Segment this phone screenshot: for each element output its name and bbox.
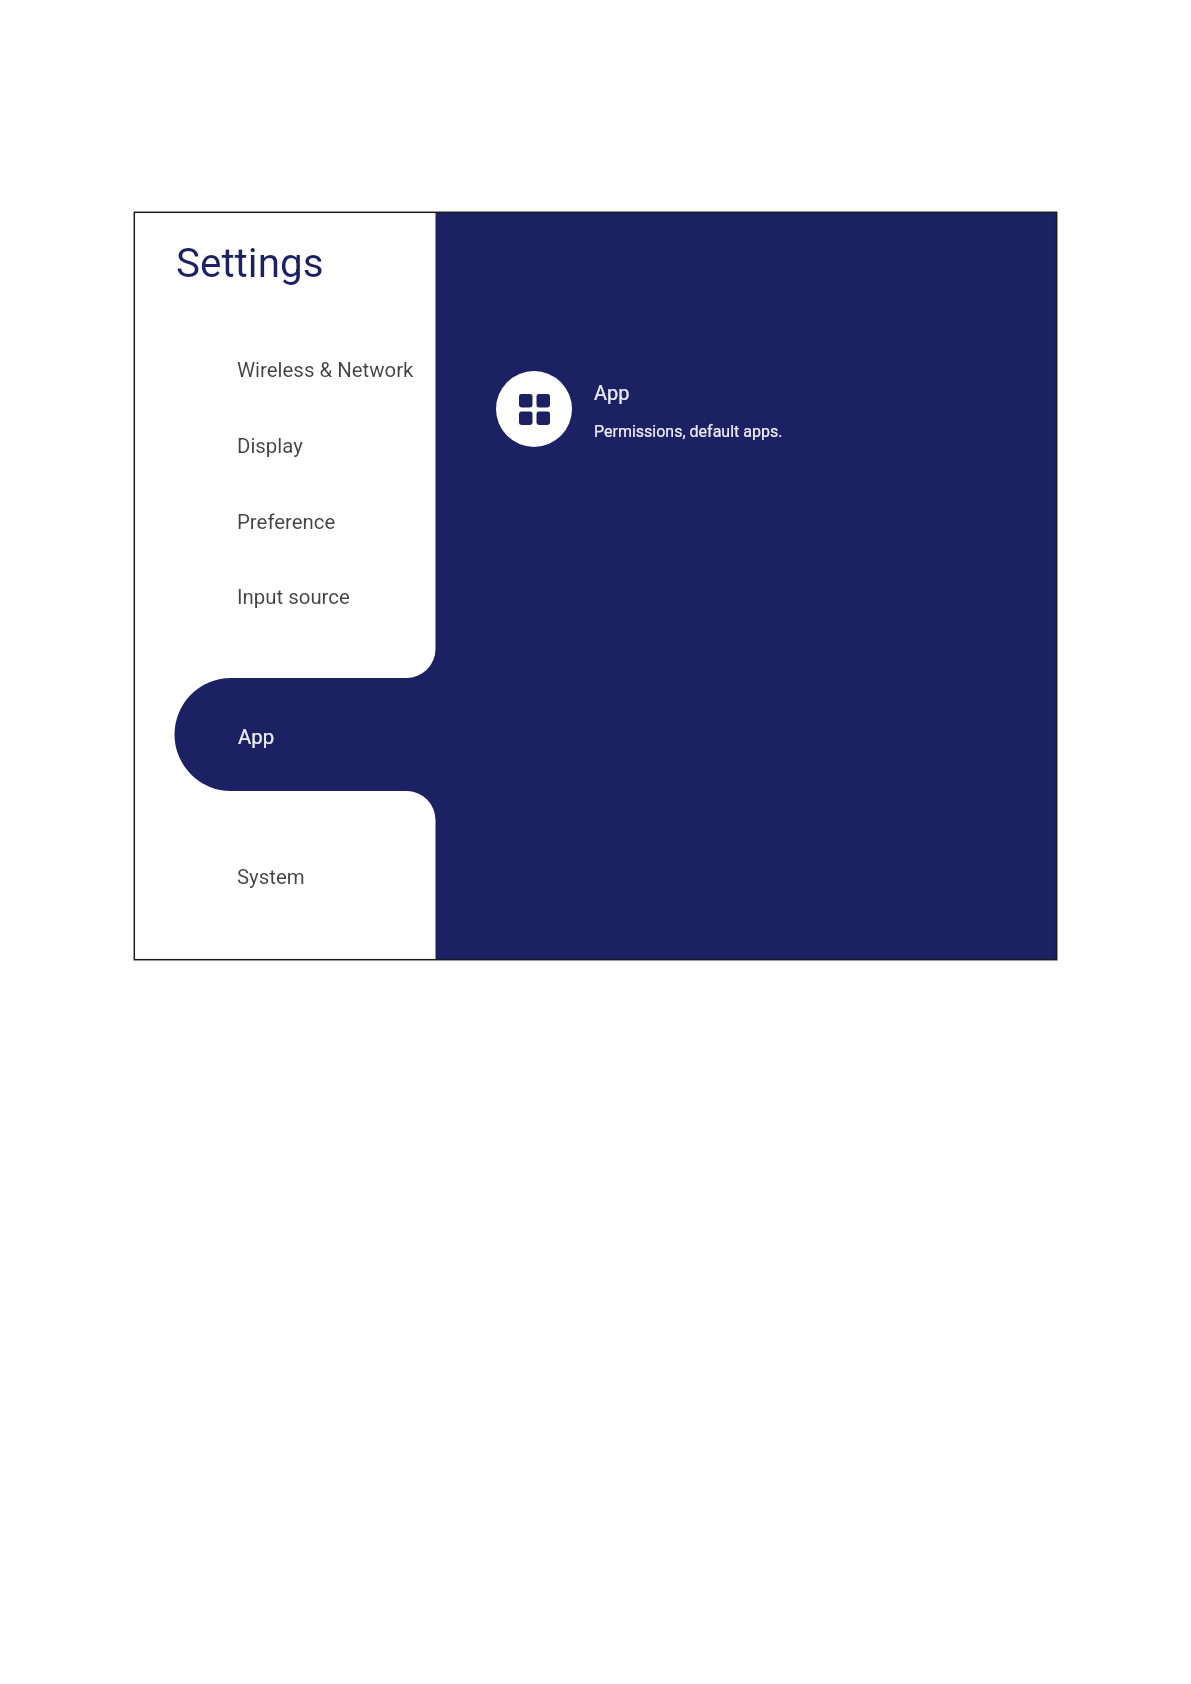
staticText: Preference xyxy=(237,510,336,534)
staticText: Input source xyxy=(237,585,350,609)
staticText: Settings xyxy=(176,240,324,287)
staticText: System xyxy=(237,865,305,889)
staticText: Permissions, default apps. xyxy=(594,422,783,441)
button[interactable]: System xyxy=(134,837,436,913)
other: Apps xyxy=(496,371,572,447)
button[interactable]: Preference xyxy=(134,482,436,558)
button[interactable]: Display xyxy=(134,406,436,482)
staticText: App xyxy=(594,381,630,404)
staticText: Wireless & Network xyxy=(237,358,414,382)
staticText: App xyxy=(238,725,275,749)
button[interactable]: Apps xyxy=(496,371,826,451)
button[interactable]: Input source xyxy=(134,557,436,633)
button[interactable]: App xyxy=(175,678,436,791)
staticText: Display xyxy=(237,434,303,458)
button[interactable]: Wireless & Network xyxy=(134,330,436,406)
